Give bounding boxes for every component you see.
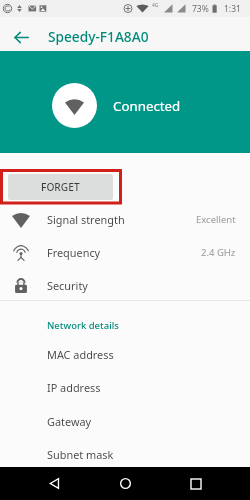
button[interactable]: MAC address [0, 338, 250, 370]
button[interactable]: Home [109, 467, 142, 500]
button[interactable]: Navigate up [4, 20, 38, 54]
staticText: 2.4 GHz [201, 246, 236, 259]
staticText: Frequency [47, 245, 101, 260]
staticText: Gateway [47, 414, 92, 429]
button[interactable]: Signal strength [0, 203, 250, 235]
staticText: IP address [47, 380, 101, 395]
staticText: Subnet mask [47, 447, 114, 462]
staticText: Connected [113, 97, 181, 115]
staticText: 4G [152, 2, 159, 9]
staticText: Excellent [196, 213, 236, 226]
staticText: 1:31 [224, 3, 241, 15]
staticText: Speedy-F1A8A0 [48, 27, 149, 46]
button[interactable]: Recent apps [179, 467, 212, 500]
staticText: 73% [192, 3, 209, 15]
staticText: Signal strength [47, 212, 125, 227]
button[interactable]: Gateway [0, 405, 250, 437]
staticText: FORGET [41, 180, 80, 194]
button[interactable]: IP address [0, 371, 250, 403]
button[interactable]: Frequency [0, 236, 250, 268]
button[interactable]: FORGET [8, 174, 113, 200]
button[interactable]: Subnet mask [0, 438, 250, 470]
button[interactable]: Security [0, 269, 250, 301]
button[interactable]: Back [38, 467, 71, 500]
staticText: Security [47, 278, 88, 293]
staticText: MAC address [47, 347, 114, 362]
staticText: Network details [47, 319, 119, 332]
